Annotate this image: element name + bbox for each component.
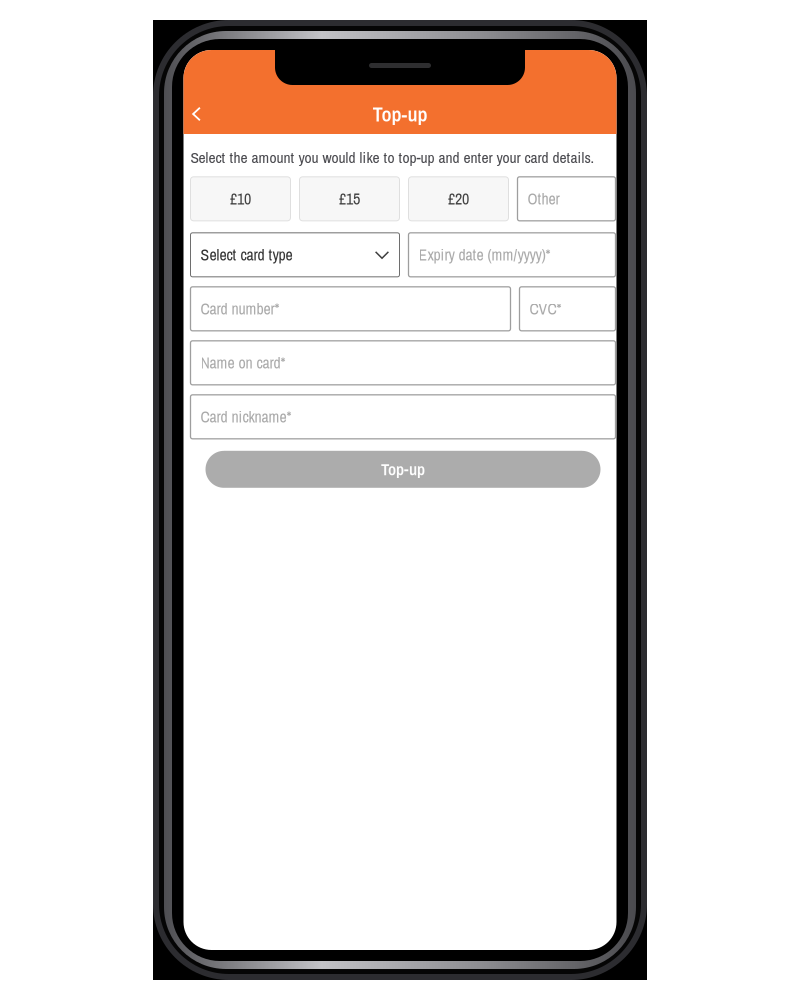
button[interactable]: Card nickname* bbox=[190, 395, 615, 439]
staticText: Other bbox=[527, 188, 559, 209]
staticText: Name on card* bbox=[200, 352, 285, 373]
staticText: £15 bbox=[339, 188, 360, 210]
staticText: Select card type bbox=[200, 244, 292, 265]
button[interactable]: Select card type bbox=[190, 233, 399, 277]
staticText: Top-up bbox=[381, 458, 425, 481]
button[interactable]: Back bbox=[183, 100, 209, 128]
staticText: Top-up bbox=[372, 100, 427, 128]
staticText: Expiry date (mm/yyyy)* bbox=[418, 244, 550, 265]
staticText: Card number* bbox=[200, 298, 279, 319]
button[interactable]: Expiry date (mm/yyyy)* bbox=[408, 233, 615, 277]
button[interactable]: £15 bbox=[299, 177, 399, 221]
button[interactable]: Top-up bbox=[205, 451, 600, 488]
button[interactable]: £10 bbox=[190, 177, 290, 221]
button[interactable]: CVC* bbox=[519, 287, 615, 331]
button[interactable]: Name on card* bbox=[190, 341, 615, 385]
button[interactable]: £20 bbox=[408, 177, 508, 221]
staticText: Select the amount you would like to top-… bbox=[190, 147, 594, 168]
button[interactable]: Other bbox=[517, 177, 615, 221]
staticText: £20 bbox=[448, 188, 469, 210]
staticText: CVC* bbox=[529, 298, 561, 319]
button[interactable]: Card number* bbox=[190, 287, 510, 331]
staticText: £10 bbox=[230, 188, 251, 210]
staticText: Card nickname* bbox=[200, 406, 291, 427]
